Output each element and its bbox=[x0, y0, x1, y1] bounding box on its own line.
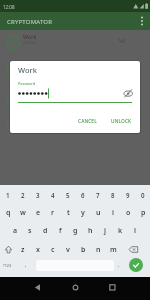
button[interactable]: v bbox=[62, 243, 74, 256]
staticText: y bbox=[81, 208, 85, 218]
button[interactable] bbox=[0, 30, 150, 54]
staticText: l bbox=[134, 226, 136, 236]
staticText: 8 bbox=[111, 191, 115, 199]
button[interactable]: 1 bbox=[2, 189, 14, 201]
button[interactable] bbox=[127, 243, 142, 256]
button[interactable]: f bbox=[54, 224, 66, 237]
staticText: z bbox=[21, 245, 25, 255]
button[interactable]: e bbox=[32, 206, 44, 219]
staticText: e bbox=[36, 208, 41, 218]
button[interactable]: 0 bbox=[137, 189, 149, 201]
staticText: 3 bbox=[36, 191, 40, 199]
staticText: r bbox=[51, 208, 55, 218]
staticText: k bbox=[118, 226, 123, 236]
staticText: , bbox=[25, 261, 27, 268]
button[interactable]: j bbox=[99, 224, 111, 237]
button[interactable] bbox=[27, 279, 47, 297]
staticText: o bbox=[126, 208, 131, 218]
staticText: w bbox=[20, 208, 26, 218]
button[interactable]: n bbox=[92, 243, 104, 256]
button[interactable]: CANCEL bbox=[72, 115, 102, 128]
button[interactable] bbox=[136, 14, 148, 28]
button[interactable]: 9 bbox=[122, 189, 134, 201]
button[interactable] bbox=[129, 258, 143, 272]
staticText: u bbox=[96, 208, 101, 218]
staticText: m bbox=[110, 245, 117, 255]
staticText: 4 bbox=[51, 191, 55, 199]
button[interactable]: t bbox=[62, 206, 74, 219]
button[interactable]: q bbox=[2, 206, 14, 219]
button[interactable]: k bbox=[114, 224, 126, 237]
button[interactable]: o bbox=[122, 206, 134, 219]
button[interactable]: m bbox=[107, 243, 119, 256]
staticText: c bbox=[51, 245, 55, 255]
button[interactable]: 2 bbox=[17, 189, 29, 201]
staticText: 7 bbox=[96, 191, 100, 199]
staticText: s bbox=[28, 226, 32, 236]
staticText: ?123 bbox=[3, 263, 12, 268]
button[interactable]: UNLOCK bbox=[105, 115, 137, 128]
button[interactable]: p bbox=[137, 206, 149, 219]
staticText: UNLOCK bbox=[111, 118, 132, 125]
staticText: h bbox=[88, 226, 93, 236]
button[interactable]: l bbox=[129, 224, 141, 237]
staticText: t bbox=[67, 208, 70, 218]
button[interactable] bbox=[122, 87, 134, 100]
button[interactable]: 5 bbox=[62, 189, 74, 201]
staticText: Password bbox=[18, 81, 36, 86]
button[interactable]: b bbox=[77, 243, 89, 256]
staticText: d bbox=[43, 226, 48, 236]
staticText: 5 bbox=[66, 191, 70, 199]
button[interactable]: w bbox=[17, 206, 29, 219]
button[interactable]: y bbox=[77, 206, 89, 219]
button[interactable]: c bbox=[47, 243, 59, 256]
button[interactable] bbox=[103, 279, 123, 297]
staticText: 9 bbox=[126, 191, 130, 199]
button[interactable]: g bbox=[69, 224, 81, 237]
staticText: n bbox=[96, 245, 101, 255]
staticText: a bbox=[13, 226, 18, 236]
staticText: b bbox=[81, 245, 86, 255]
button[interactable]: s bbox=[24, 224, 36, 237]
button[interactable]: u bbox=[92, 206, 104, 219]
staticText: 12:08 bbox=[3, 4, 15, 10]
button[interactable]: a bbox=[9, 224, 21, 237]
staticText: 1 bbox=[6, 191, 10, 199]
button[interactable]: z bbox=[17, 243, 29, 256]
staticText: . bbox=[118, 261, 120, 268]
button[interactable]: 6 bbox=[77, 189, 89, 201]
staticText: 2 bbox=[21, 191, 25, 199]
button[interactable]: . bbox=[113, 257, 125, 271]
button[interactable]: r bbox=[47, 206, 59, 219]
button[interactable]: 7 bbox=[92, 189, 104, 201]
button[interactable]: 4 bbox=[47, 189, 59, 201]
button[interactable]: h bbox=[84, 224, 96, 237]
staticText: CANCEL bbox=[78, 118, 97, 125]
staticText: g bbox=[73, 226, 78, 236]
button[interactable]: ?123 bbox=[0, 259, 15, 271]
staticText: v bbox=[66, 245, 70, 255]
staticText: q bbox=[6, 208, 11, 218]
staticText: Work bbox=[18, 65, 37, 75]
staticText: 6 bbox=[81, 191, 85, 199]
staticText: 0 bbox=[141, 191, 145, 199]
button[interactable]: 3 bbox=[32, 189, 44, 201]
button[interactable]: , bbox=[20, 257, 32, 271]
staticText: j bbox=[104, 226, 106, 236]
staticText: i bbox=[112, 208, 114, 218]
button[interactable]: x bbox=[32, 243, 44, 256]
button[interactable] bbox=[1, 243, 15, 256]
button[interactable]: 8 bbox=[107, 189, 119, 201]
button[interactable]: d bbox=[39, 224, 51, 237]
button[interactable] bbox=[66, 279, 86, 297]
staticText: x bbox=[36, 245, 40, 255]
staticText: f bbox=[59, 226, 62, 236]
button[interactable]: i bbox=[107, 206, 119, 219]
staticText: CRYPTOMATOR bbox=[7, 18, 53, 26]
staticText: p bbox=[141, 208, 146, 218]
staticText: Work bbox=[23, 33, 37, 40]
